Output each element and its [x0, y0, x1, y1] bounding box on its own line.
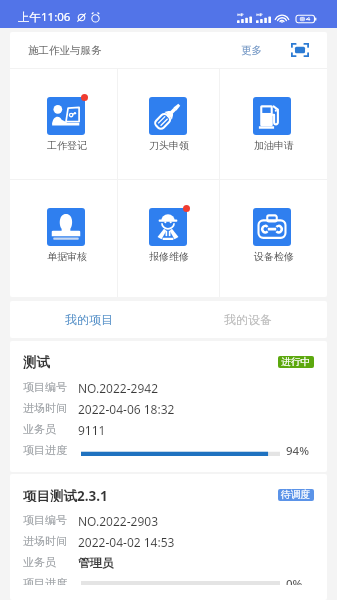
staticText: 2022-04-06 18:32: [78, 401, 175, 415]
staticText: 更多: [241, 44, 262, 57]
button[interactable]: Scan QR code: [291, 41, 309, 59]
staticText: 9111: [78, 422, 106, 436]
staticText: 管理员: [78, 555, 114, 569]
staticText: NO.2022-2942: [78, 380, 159, 394]
staticText: 工作登记: [47, 139, 87, 152]
button[interactable]: 刀头申领: [118, 69, 219, 179]
button[interactable]: 工作登记: [10, 69, 117, 179]
staticText: 项目编号: [23, 380, 67, 394]
staticText: 2022-04-02 14:53: [78, 534, 175, 548]
button[interactable]: 更多: [236, 37, 267, 64]
button[interactable]: 待调度: [278, 489, 314, 501]
button[interactable]: 单据审核: [10, 180, 117, 297]
staticText: 报修维修: [149, 250, 189, 263]
staticText: 刀头申领: [149, 139, 189, 152]
button[interactable]: 加油申请: [220, 69, 327, 179]
staticText: 单据审核: [47, 250, 87, 263]
staticText: 项目编号: [23, 513, 67, 527]
button[interactable]: 测试: [10, 341, 327, 472]
button[interactable]: 进行中: [278, 356, 314, 368]
staticText: 进场时间: [23, 534, 67, 548]
staticText: 我的设备: [224, 312, 272, 327]
staticText: 设备检修: [254, 250, 294, 263]
staticText: 项目进度: [23, 576, 67, 585]
staticText: 我的项目: [65, 312, 113, 327]
staticText: 进行中: [281, 356, 311, 368]
staticText: 业务员: [23, 555, 56, 569]
staticText: 项目测试2.3.1: [23, 487, 108, 502]
staticText: 施工作业与服务: [28, 44, 102, 57]
staticText: 进场时间: [23, 401, 67, 415]
button[interactable]: 我的项目: [10, 301, 168, 338]
button[interactable]: 项目测试2.3.1: [10, 474, 327, 600]
staticText: 待调度: [281, 489, 311, 501]
staticText: 测试: [23, 354, 50, 369]
staticText: 业务员: [23, 422, 56, 436]
staticText: 0%: [286, 576, 314, 585]
staticText: NO.2022-2903: [78, 513, 159, 527]
staticText: 94%: [286, 443, 314, 457]
button[interactable]: 报修维修: [118, 180, 219, 297]
staticText: 上午11:06: [18, 9, 71, 25]
button[interactable]: 我的设备: [168, 301, 327, 338]
staticText: 项目进度: [23, 443, 67, 457]
staticText: 加油申请: [254, 139, 294, 152]
button[interactable]: 设备检修: [220, 180, 327, 297]
